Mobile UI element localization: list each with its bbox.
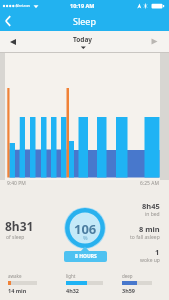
staticText: 4h32	[66, 287, 80, 294]
button[interactable]: light	[66, 273, 103, 294]
staticText: 8h31	[5, 218, 34, 234]
staticText: Verizon	[16, 3, 31, 8]
staticText: %	[83, 235, 88, 242]
button[interactable]	[4, 33, 22, 51]
staticText: 8 HOURS	[75, 253, 97, 260]
button[interactable]: awake	[8, 273, 37, 294]
button[interactable]: Today	[0, 35, 167, 49]
staticText: of sleep	[6, 234, 25, 241]
button[interactable]	[0, 13, 18, 31]
staticText: 8 min	[139, 224, 160, 234]
staticText: 10:19 AM	[70, 2, 95, 9]
staticText: to fall asleep	[130, 234, 160, 241]
staticText: Sleep	[73, 15, 96, 27]
button[interactable]: 8 HOURS	[64, 251, 107, 262]
staticText: in bed	[145, 211, 160, 218]
staticText: 3h59	[122, 287, 136, 294]
staticText: light	[66, 273, 76, 279]
staticText: 9:40 PM	[7, 180, 26, 187]
staticText: Today	[73, 35, 93, 44]
staticText: 14 min	[8, 287, 27, 294]
staticText: 106	[74, 220, 97, 237]
staticText: 8h45	[142, 201, 160, 211]
staticText: 6:25 AM	[140, 180, 159, 187]
staticText: awake	[8, 273, 22, 279]
staticText: deep	[122, 273, 133, 279]
staticText: woke up	[140, 257, 160, 264]
button[interactable]: deep	[122, 273, 152, 294]
button[interactable]	[146, 33, 164, 51]
staticText: 1	[155, 247, 160, 257]
